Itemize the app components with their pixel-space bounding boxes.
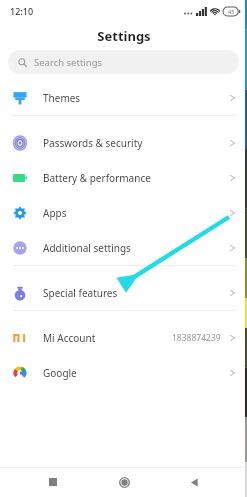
button[interactable]: Additional settings bbox=[0, 230, 247, 265]
button[interactable]: Battery & performance bbox=[0, 160, 247, 195]
staticText: Passwords & security bbox=[43, 136, 143, 150]
staticText: Search settings bbox=[34, 56, 103, 69]
button[interactable]: Special features bbox=[0, 275, 247, 310]
button[interactable]: Home bbox=[106, 467, 142, 497]
staticText: Battery & performance bbox=[43, 171, 151, 185]
button[interactable]: Passwords & security bbox=[0, 125, 247, 160]
staticText: Special features bbox=[43, 286, 118, 300]
button[interactable]: Google bbox=[0, 355, 247, 390]
staticText: Settings bbox=[97, 27, 151, 45]
button[interactable]: Recents bbox=[35, 467, 71, 497]
staticText: 1838874239 bbox=[172, 332, 221, 344]
button[interactable]: Search settings bbox=[8, 50, 239, 74]
button[interactable]: Mi Account bbox=[0, 320, 247, 355]
button[interactable]: Back bbox=[176, 467, 212, 497]
staticText: 12:10 bbox=[10, 5, 34, 17]
staticText: Themes bbox=[43, 91, 81, 105]
staticText: Mi Account bbox=[43, 331, 96, 345]
button[interactable]: Apps bbox=[0, 195, 247, 230]
staticText: 45 bbox=[228, 8, 235, 15]
staticText: Google bbox=[43, 366, 77, 380]
staticText: Apps bbox=[43, 206, 67, 220]
staticText: Additional settings bbox=[43, 241, 131, 255]
button[interactable]: Themes bbox=[0, 80, 247, 115]
